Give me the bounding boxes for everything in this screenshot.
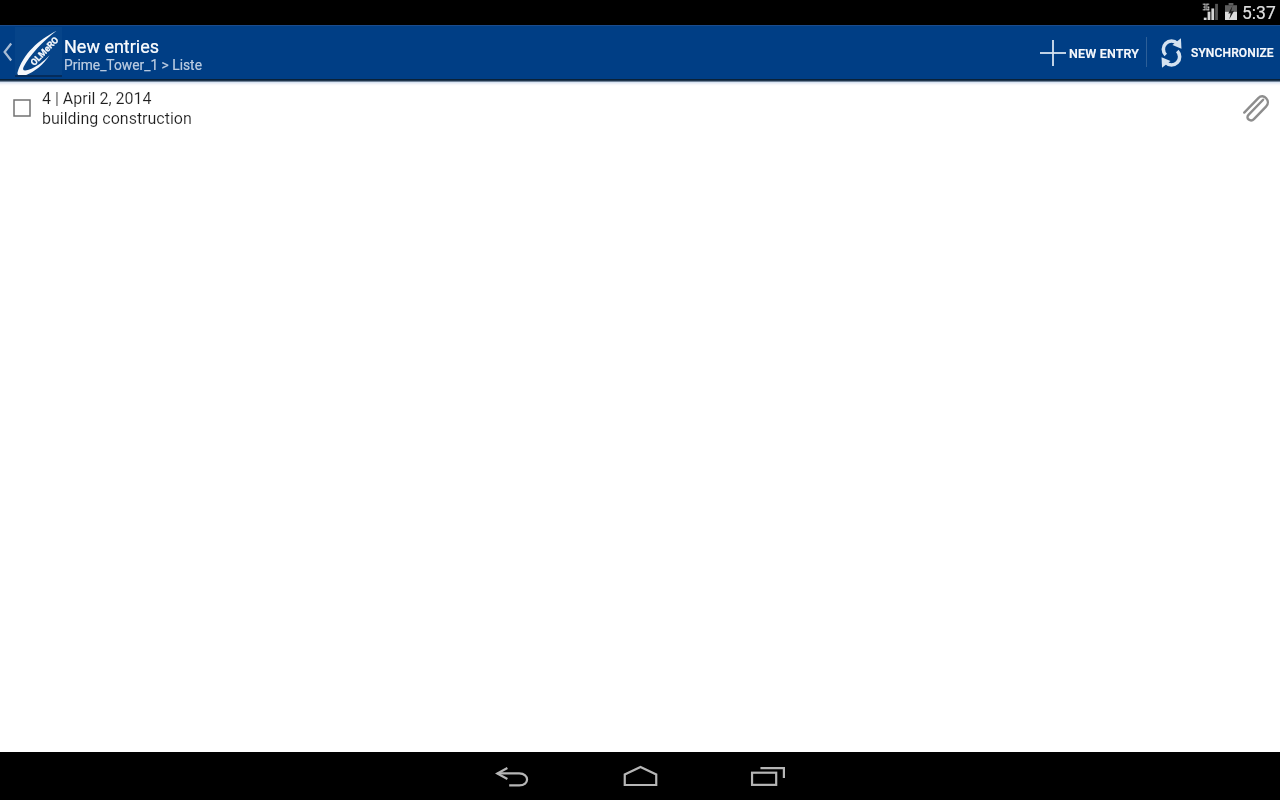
button[interactable]: Recent apps xyxy=(704,752,832,800)
button[interactable]: Attachment xyxy=(1234,84,1274,124)
button[interactable]: Navigate up xyxy=(0,25,62,79)
staticText: 4 | April 2, 2014 xyxy=(42,89,152,108)
staticText: New entries xyxy=(64,36,160,57)
staticText: SYNCHRONIZE xyxy=(1191,46,1274,60)
staticText: NEW ENTRY xyxy=(1069,46,1139,61)
button[interactable]: SYNCHRONIZE xyxy=(1147,25,1280,79)
button[interactable]: Select entry xyxy=(0,86,1280,132)
staticText: building construction xyxy=(42,109,192,128)
button[interactable]: Select entry xyxy=(14,100,30,116)
staticText: OLMeRO xyxy=(28,35,61,68)
staticText: Prime_Tower_1 > Liste xyxy=(64,57,202,73)
staticText: 5:37 xyxy=(1242,3,1276,24)
button[interactable]: NEW ENTRY xyxy=(1032,25,1146,79)
button[interactable]: Home xyxy=(576,752,704,800)
button[interactable]: Back xyxy=(448,752,576,800)
